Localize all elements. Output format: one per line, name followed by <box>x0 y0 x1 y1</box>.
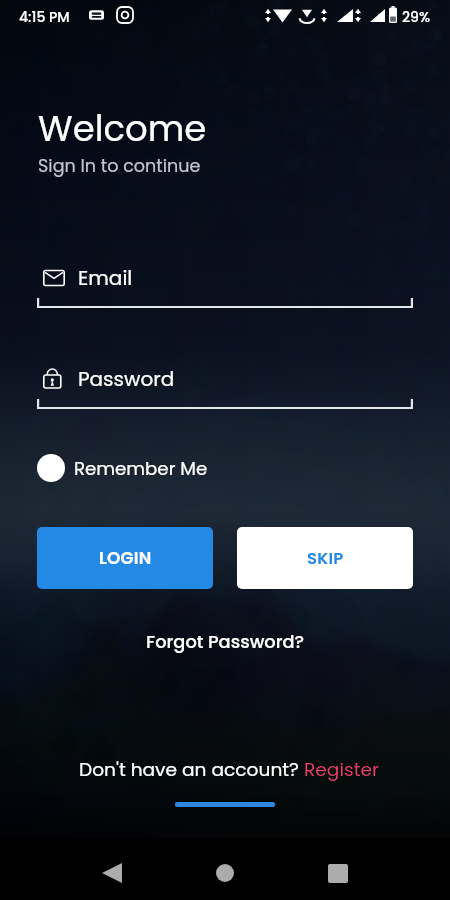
button[interactable]: Recent apps <box>308 842 368 900</box>
staticText: Email <box>78 264 133 292</box>
staticText: LOGIN <box>99 546 152 570</box>
button[interactable]: Back <box>82 842 142 900</box>
button[interactable]: Home <box>195 842 255 900</box>
button[interactable]: Forgot Password? <box>140 623 311 660</box>
staticText: Remember Me <box>74 456 208 481</box>
staticText: Don't have an account? <box>79 756 304 782</box>
button[interactable]: LOGIN <box>37 527 213 589</box>
staticText: 4:15 PM <box>19 7 70 27</box>
staticText: Welcome <box>38 104 207 154</box>
button[interactable]: Remember Me <box>37 452 214 484</box>
staticText: Password <box>78 365 175 393</box>
button[interactable]: SKIP <box>237 527 413 589</box>
staticText: Register <box>304 756 379 782</box>
button[interactable]: Don't have an account? <box>75 754 383 784</box>
staticText: Sign In to continue <box>38 154 201 179</box>
staticText: SKIP <box>307 547 344 570</box>
staticText: 29% <box>402 7 431 27</box>
